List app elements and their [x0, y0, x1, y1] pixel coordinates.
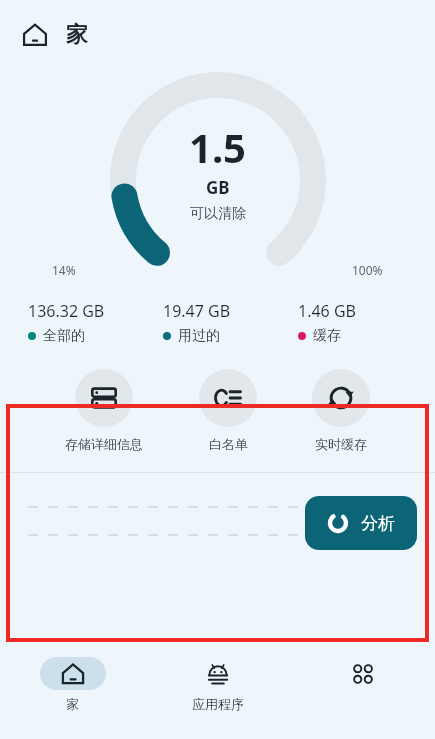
staticText: 136.32 GB [28, 300, 105, 322]
staticText: GB [206, 176, 230, 199]
staticText: 14% [52, 262, 76, 278]
staticText: 缓存 [313, 327, 341, 345]
other: 家 [40, 657, 106, 690]
button[interactable]: 白名单 [195, 365, 261, 456]
button[interactable]: 应用程序 [145, 653, 290, 712]
staticText: 19.47 GB [163, 300, 231, 322]
other: More [330, 657, 396, 690]
staticText: 用过的 [178, 327, 220, 345]
other: 应用程序 [185, 657, 251, 690]
button[interactable]: 实时缓存 [308, 365, 374, 456]
staticText: 100% [352, 262, 383, 278]
staticText: 白名单 [209, 436, 248, 452]
staticText: 可以清除 [190, 205, 246, 223]
staticText: 应用程序 [192, 696, 244, 712]
button[interactable]: 存储详细信息 [61, 365, 147, 456]
other: Home [22, 22, 48, 48]
staticText: 家 [66, 696, 79, 712]
button[interactable]: 家 [0, 653, 145, 712]
staticText: 1.46 GB [298, 300, 356, 322]
staticText: 家 [66, 21, 88, 49]
staticText: 存储详细信息 [65, 436, 143, 452]
staticText: 全部的 [43, 327, 85, 345]
staticText: 1.5 [189, 120, 246, 174]
staticText: 分析 [361, 513, 395, 534]
staticText: 实时缓存 [315, 436, 367, 452]
button[interactable]: 分析 [305, 496, 417, 550]
button[interactable]: More [290, 653, 435, 696]
